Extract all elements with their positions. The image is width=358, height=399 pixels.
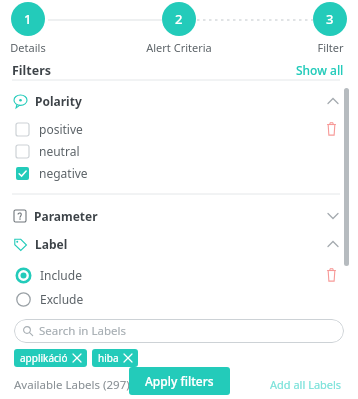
staticText: Search in Labels <box>39 323 126 339</box>
button[interactable]: positive <box>0 118 358 140</box>
button[interactable]: applikáció <box>14 349 87 367</box>
staticText: Label <box>35 236 68 252</box>
staticText: Include <box>40 267 82 283</box>
staticText: Details <box>10 40 46 55</box>
button[interactable]: Polarity <box>0 90 358 112</box>
staticText: 2 <box>175 10 183 28</box>
button[interactable]: hiba <box>92 349 138 367</box>
staticText: Add all Labels <box>270 377 342 392</box>
staticText: 1 <box>24 10 32 28</box>
button[interactable]: 1 <box>0 2 73 55</box>
button[interactable]: Show all <box>294 60 346 80</box>
staticText: Filters <box>12 62 52 79</box>
staticText: Available Labels (297) <box>14 377 130 393</box>
button[interactable]: Search in Labels <box>14 319 344 343</box>
staticText: Show all <box>296 62 344 78</box>
button[interactable]: 3 <box>285 2 358 55</box>
staticText: positive <box>39 121 83 137</box>
staticText: Filter <box>317 40 344 55</box>
button[interactable]: Delete <box>326 267 337 283</box>
button[interactable]: Parameter <box>0 205 358 227</box>
staticText: Parameter <box>34 208 98 224</box>
staticText: applikáció <box>20 351 68 365</box>
staticText: 3 <box>326 10 334 28</box>
staticText: hiba <box>98 351 119 365</box>
staticText: Polarity <box>35 93 82 109</box>
staticText: neutral <box>39 143 80 159</box>
button[interactable]: Add all Labels <box>268 375 344 394</box>
button[interactable]: Include <box>0 263 358 287</box>
staticText: negative <box>39 165 88 181</box>
button[interactable]: Apply filters <box>129 367 230 395</box>
staticText: Alert Criteria <box>146 40 212 55</box>
staticText: Exclude <box>40 291 84 307</box>
button[interactable]: Label <box>0 233 358 255</box>
button[interactable]: Exclude <box>0 287 358 311</box>
button[interactable]: Delete <box>326 121 337 137</box>
button[interactable]: negative <box>0 162 358 184</box>
button[interactable]: 2 <box>134 2 224 55</box>
button[interactable]: neutral <box>0 140 358 162</box>
staticText: Apply filters <box>145 373 214 389</box>
